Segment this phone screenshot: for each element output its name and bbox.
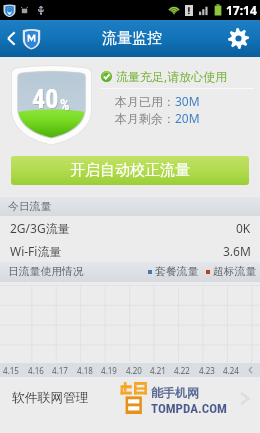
button[interactable]: 开启自动校正流量: [11, 156, 249, 185]
staticText: 软件联网管理: [12, 390, 89, 406]
staticText: 30M: [175, 93, 200, 109]
staticText: 4.24: [223, 365, 239, 376]
staticText: 开启自动校正流量: [70, 161, 190, 180]
staticText: 4.21: [150, 365, 166, 376]
staticText: 0K: [236, 220, 251, 236]
staticText: 4.17: [52, 365, 68, 376]
staticText: 40: [32, 84, 59, 114]
staticText: %: [61, 97, 71, 115]
staticText: 40: [33, 85, 60, 115]
staticText: 今日流量: [8, 200, 52, 214]
button[interactable]: 软件联网管理: [0, 376, 260, 420]
button[interactable]: Settings: [216, 20, 260, 57]
button[interactable]: 2G/3G流量: [0, 216, 260, 239]
staticText: 日流量使用情况: [8, 265, 84, 279]
staticText: 4.15: [3, 365, 19, 376]
staticText: Wi-Fi流量: [10, 243, 62, 259]
staticText: 套餐流量: [155, 265, 199, 279]
staticText: TOMPDA.COM: [151, 401, 227, 416]
staticText: %: [60, 96, 70, 114]
button[interactable]: Wi-Fi流量: [0, 239, 260, 262]
staticText: 4.19: [101, 365, 117, 376]
staticText: 4.22: [174, 365, 190, 376]
staticText: 17:14: [226, 2, 257, 18]
staticText: 本月已用：: [115, 94, 175, 109]
staticText: 流量监控: [102, 29, 162, 48]
staticText: 流量充足,请放心使用: [116, 68, 228, 84]
staticText: 2G/3G流量: [10, 220, 70, 236]
staticText: 4.23: [199, 365, 215, 376]
staticText: 4.18: [77, 365, 93, 376]
staticText: 能手机网: [151, 385, 199, 400]
staticText: 4.20: [126, 365, 142, 376]
staticText: 超标流量: [213, 265, 257, 279]
staticText: 本月剩余：: [115, 111, 175, 126]
staticText: 3.6M: [223, 243, 251, 259]
staticText: 20M: [175, 110, 200, 126]
button[interactable]: Back: [0, 20, 49, 57]
staticText: 4.16: [28, 365, 44, 376]
